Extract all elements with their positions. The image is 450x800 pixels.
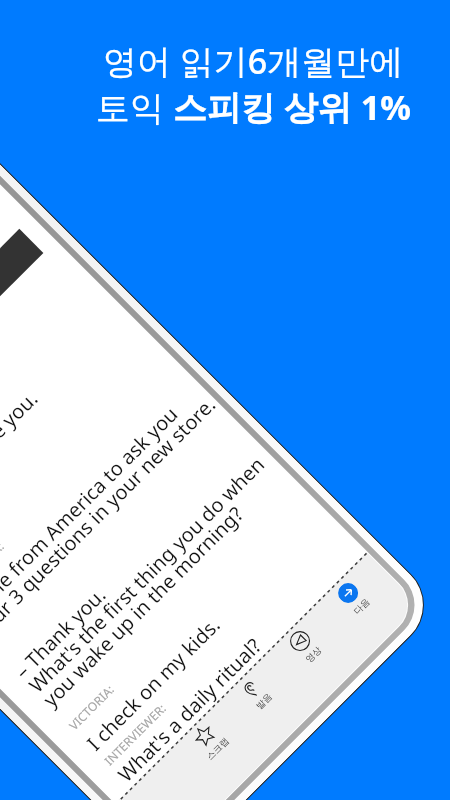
button[interactable]: 스크랩 (183, 715, 235, 767)
button[interactable]: 발음 (231, 668, 282, 719)
staticText: What's the first thing you do when (23, 451, 270, 698)
staticText: What's a daily ritual? (112, 632, 267, 787)
staticText: you wake up in the morning? (37, 500, 249, 712)
staticText: 스크랩 (204, 735, 231, 762)
staticText: John, good to see you. (0, 385, 43, 552)
staticText: I came from America to ask you (0, 401, 183, 630)
staticText: 토익 (96, 84, 173, 130)
button[interactable]: 다음 (334, 579, 362, 607)
staticText: 영상 (303, 644, 323, 664)
staticText: INTERVIEWER: (0, 538, 7, 606)
staticText: – Thank you. (9, 581, 112, 684)
button[interactable]: 영상 (279, 620, 331, 672)
staticText: your 3 questions in your new store. (0, 391, 221, 644)
staticText: 영어 읽기6개월만에 (103, 38, 404, 84)
staticText: I check on my kids. (81, 611, 226, 756)
staticText: 다음 (351, 596, 371, 616)
staticText: VICTORIA: (65, 681, 118, 733)
staticText: INTERVIEWER: (101, 700, 169, 768)
staticText: 발음 (253, 691, 274, 711)
staticText: 스피킹 상위 1% (173, 84, 411, 130)
